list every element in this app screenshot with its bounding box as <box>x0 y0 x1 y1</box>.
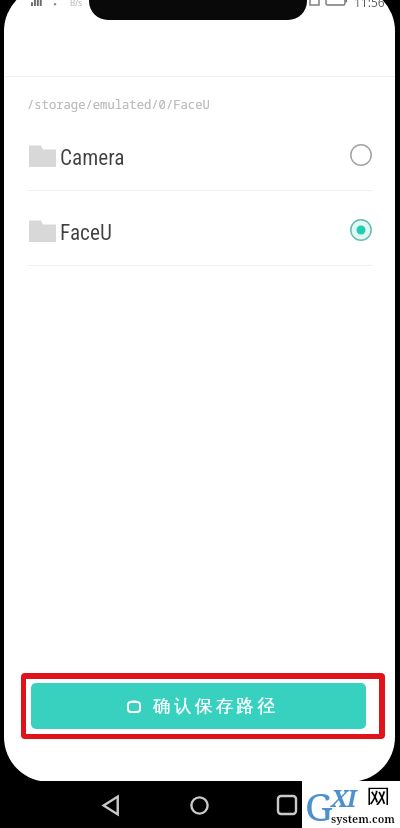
staticText: 11:56 <box>354 0 385 10</box>
staticText: I <box>347 782 357 813</box>
staticText: FaceU <box>60 220 112 245</box>
button[interactable]: FaceU <box>4 191 395 266</box>
button[interactable]: Recents <box>269 787 305 823</box>
staticText: 确认保存路径 <box>153 695 279 717</box>
button[interactable]: Camera <box>4 116 395 191</box>
staticText: 网 <box>366 783 389 805</box>
staticText: /storage/emulated/0/FaceU <box>27 96 210 113</box>
staticText: X <box>331 782 348 813</box>
staticText: system.com <box>331 811 395 826</box>
button[interactable]: Back <box>93 787 129 823</box>
staticText: G <box>305 779 333 826</box>
staticText: B/s <box>70 0 83 8</box>
button[interactable]: Home <box>181 787 217 823</box>
staticText: Camera <box>60 145 125 170</box>
button[interactable]: 确认保存路径 <box>31 683 366 729</box>
